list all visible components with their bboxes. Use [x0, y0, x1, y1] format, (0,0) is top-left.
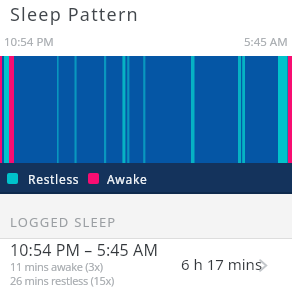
button[interactable]: 10:54 PM – 5:45 AM — [0, 239, 292, 300]
staticText: 5:45 AM — [244, 34, 288, 50]
staticText: LOGGED SLEEP — [10, 213, 117, 231]
staticText: 11 mins awake (3x) — [10, 259, 103, 274]
staticText: 26 mins restless (15x) — [10, 273, 115, 288]
staticText: 6 h 17 mins — [181, 254, 263, 274]
staticText: Awake — [107, 171, 148, 187]
staticText: 10:54 PM — [4, 34, 54, 50]
staticText: Sleep Pattern — [10, 2, 139, 27]
staticText: Restless — [28, 171, 80, 187]
staticText: 10:54 PM – 5:45 AM — [10, 239, 159, 261]
